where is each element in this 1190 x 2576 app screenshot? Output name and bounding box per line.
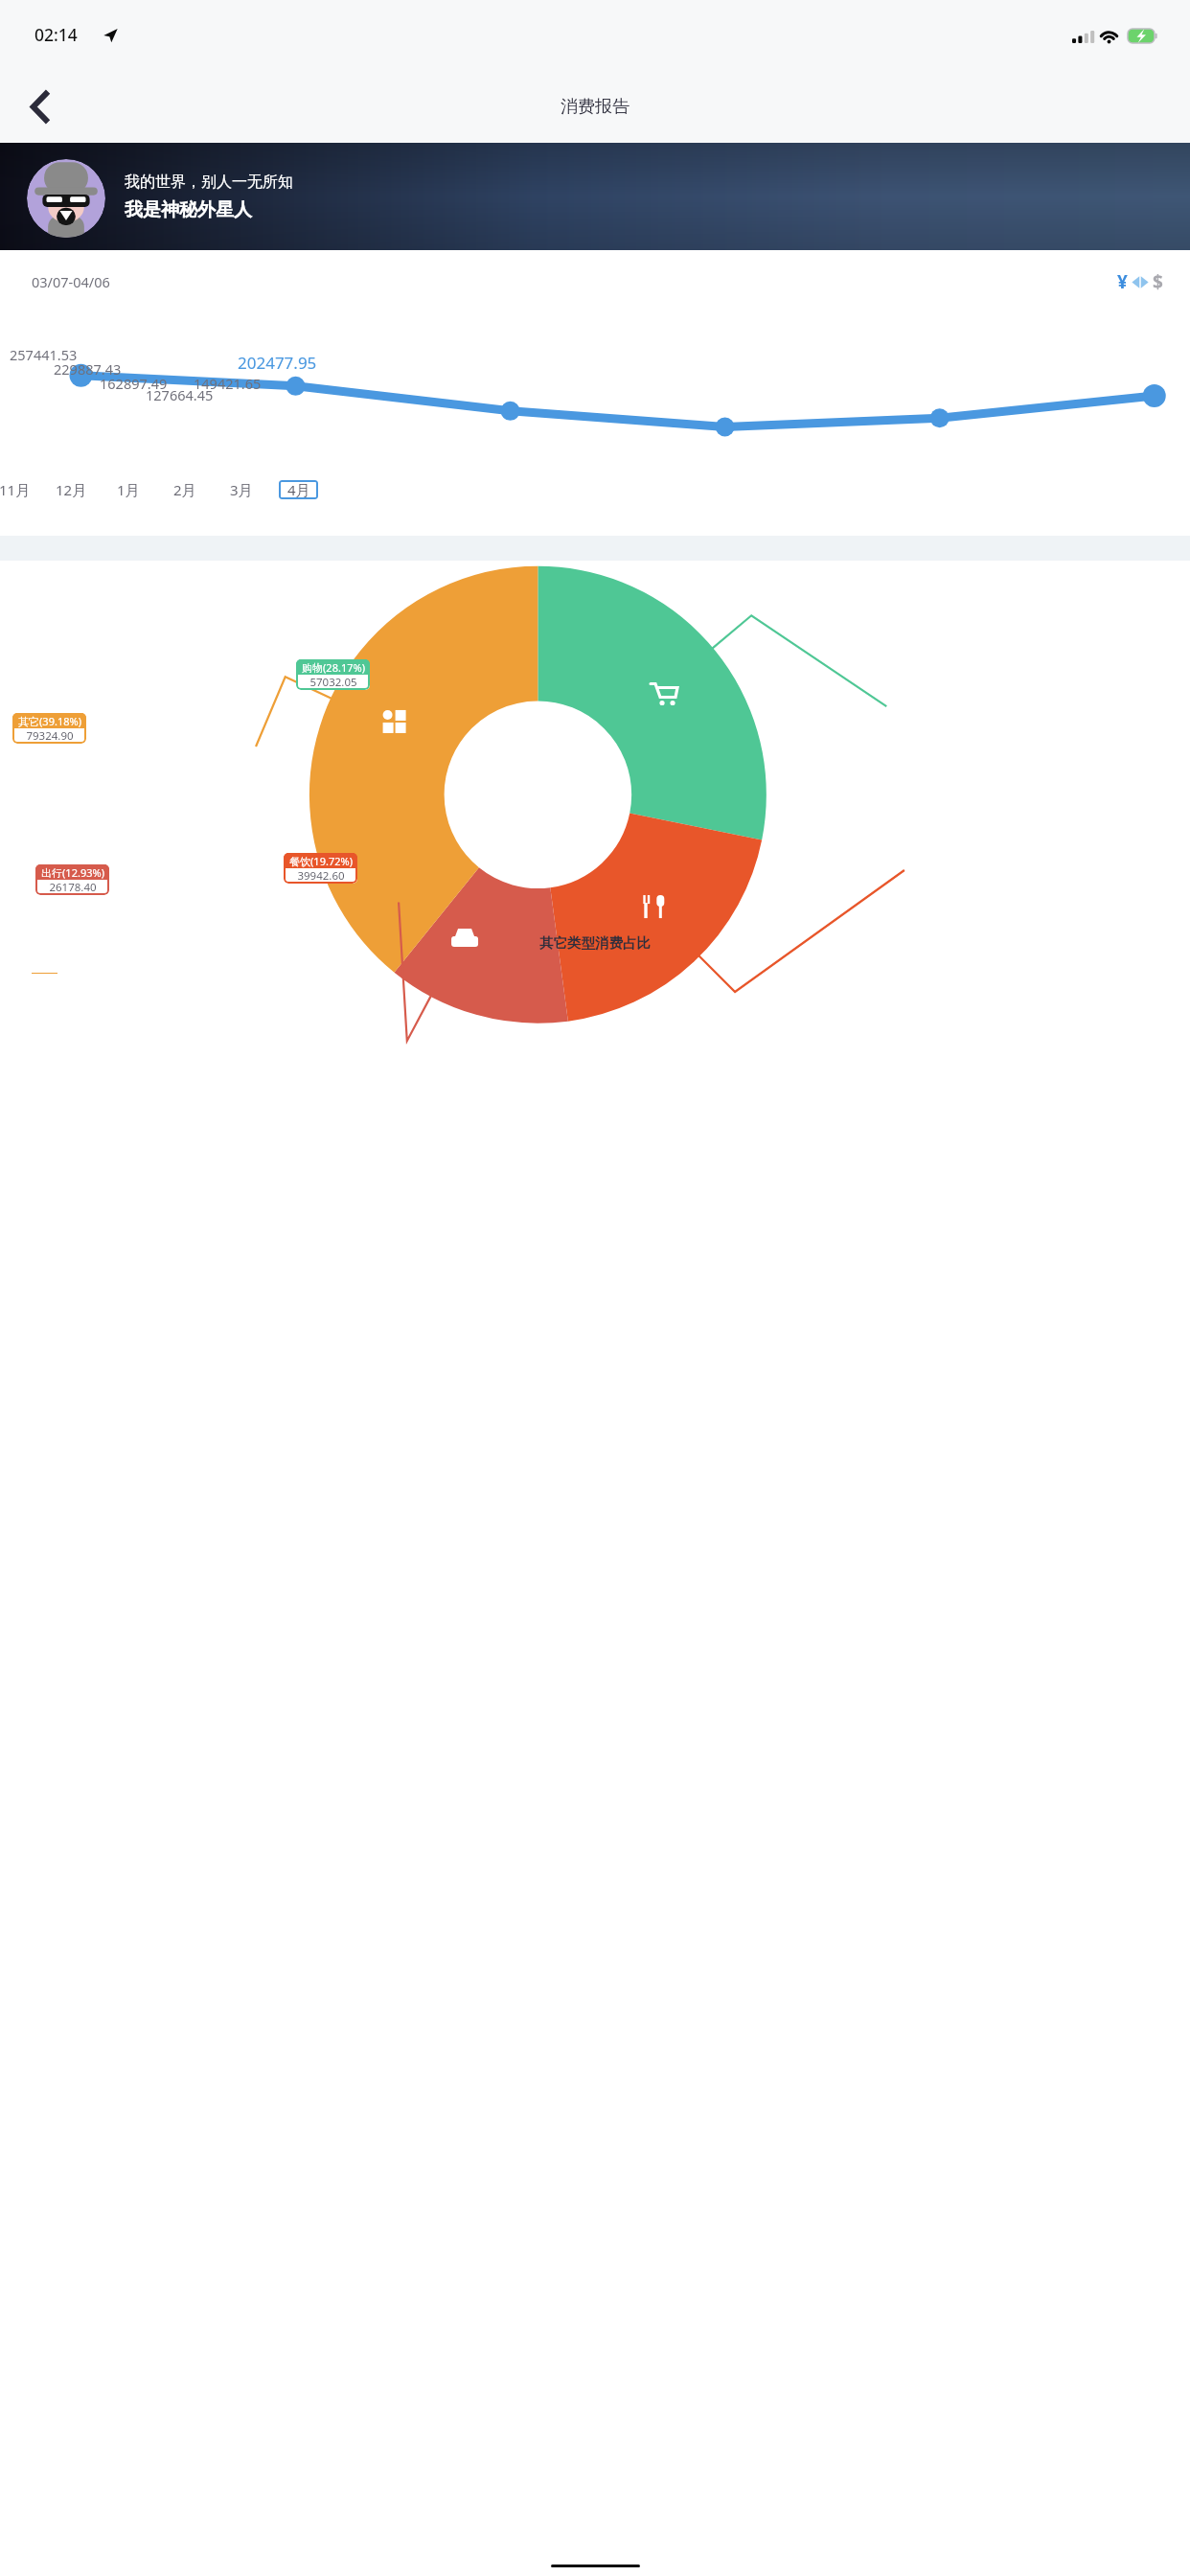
staticText: 4月 bbox=[287, 480, 310, 499]
staticText: 11月 bbox=[0, 480, 31, 499]
staticText: 1月 bbox=[117, 480, 140, 499]
staticText: 162897.49 bbox=[100, 374, 168, 393]
staticText: 我的世界，别人一无所知 bbox=[125, 172, 293, 192]
button[interactable]: 我的世界，别人一无所知 bbox=[0, 143, 1190, 250]
button[interactable]: 4月 bbox=[279, 480, 318, 499]
staticText: 149421.65 bbox=[194, 374, 262, 393]
staticText: 3月 bbox=[230, 480, 253, 499]
staticText: 餐饮(19.72%) bbox=[289, 854, 353, 868]
button[interactable]: 12月 bbox=[52, 480, 91, 499]
button[interactable]: 出行(12.93%) bbox=[35, 864, 109, 895]
staticText: 02:14 bbox=[34, 23, 78, 46]
staticText: 购物(28.17%) bbox=[302, 660, 365, 675]
staticText: 消费报告 bbox=[561, 96, 629, 118]
staticText: 其它(39.18%) bbox=[18, 714, 81, 728]
staticText: 2月 bbox=[173, 480, 196, 499]
button[interactable]: 其它(39.18%) bbox=[12, 713, 86, 744]
staticText: 39942.60 bbox=[297, 868, 345, 884]
staticText: 26178.40 bbox=[49, 880, 97, 895]
staticText: 127664.45 bbox=[146, 385, 214, 404]
staticText: 229887.43 bbox=[54, 359, 122, 379]
staticText: 12月 bbox=[56, 480, 87, 499]
staticText: 消费分析 bbox=[0, 596, 1190, 613]
staticText: $ bbox=[1153, 269, 1163, 294]
staticText: 202477.95 bbox=[238, 352, 317, 374]
button[interactable]: Back bbox=[0, 71, 79, 143]
staticText: ¥ bbox=[1117, 269, 1128, 294]
button[interactable]: 2月 bbox=[165, 480, 204, 499]
staticText: 57032.05 bbox=[309, 675, 357, 690]
staticText: 03/07-04/06 bbox=[32, 272, 110, 291]
button[interactable]: 购物(28.17%) bbox=[296, 659, 370, 690]
staticText: 我是神秘外星人 bbox=[125, 198, 252, 221]
button[interactable]: Switch currency bbox=[1117, 269, 1163, 294]
staticText: 出行(12.93%) bbox=[41, 865, 104, 880]
staticText: 79324.90 bbox=[26, 728, 74, 744]
button[interactable]: 11月 bbox=[0, 480, 34, 499]
button[interactable]: 餐饮(19.72%) bbox=[284, 853, 357, 884]
staticText: 257441.53 bbox=[10, 345, 78, 364]
staticText: 其它类型消费占比 bbox=[0, 934, 1190, 952]
button[interactable]: 3月 bbox=[221, 480, 261, 499]
button[interactable]: 1月 bbox=[108, 480, 148, 499]
